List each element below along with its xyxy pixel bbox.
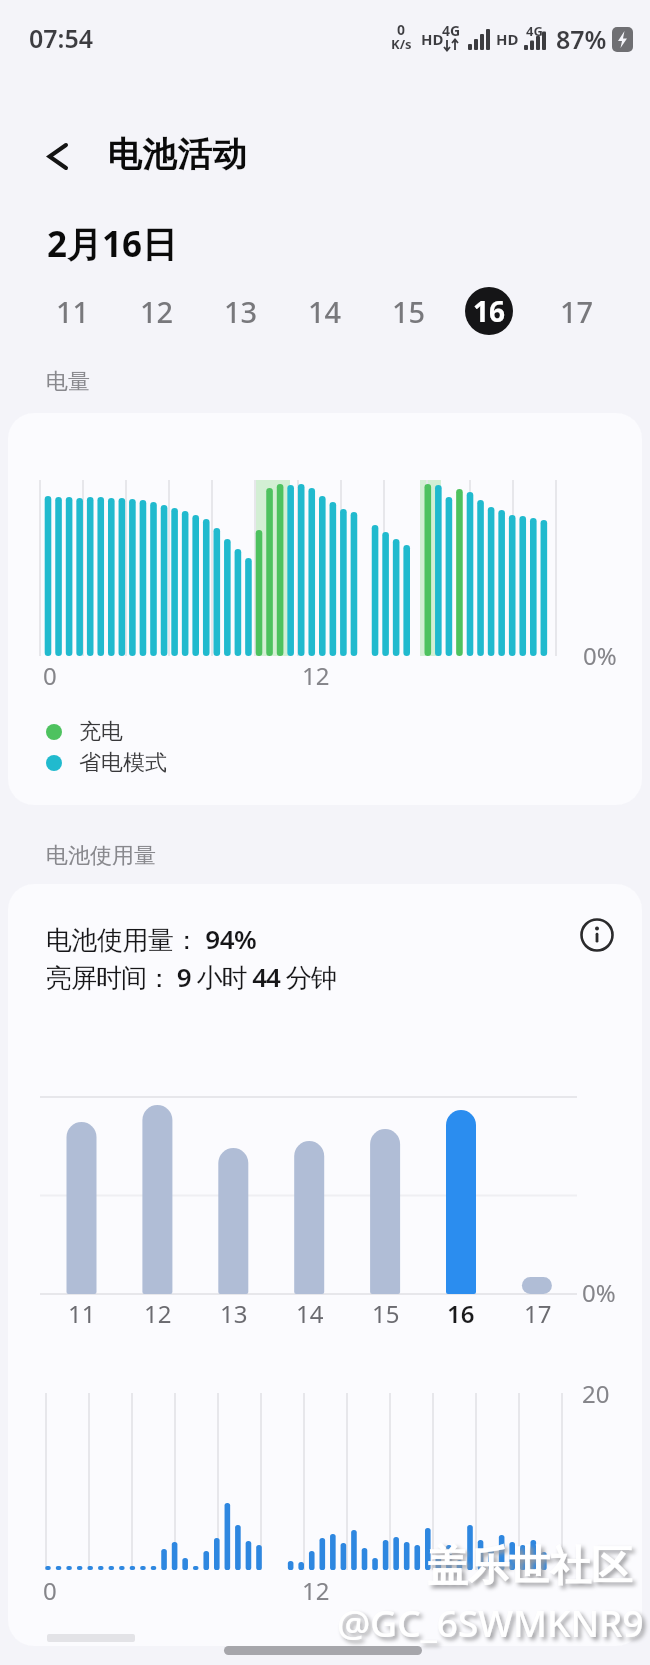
staticText: 电池使用量： 94% bbox=[46, 921, 257, 957]
staticText: 11 bbox=[68, 1297, 96, 1330]
button[interactable]: 11 bbox=[43, 287, 103, 335]
staticText: 电量 bbox=[46, 368, 90, 396]
staticText: 16 bbox=[447, 1297, 475, 1330]
staticText: 12 bbox=[302, 1574, 330, 1607]
staticText: 13 bbox=[220, 1297, 248, 1330]
staticText: @GC_6SWMKNR9 bbox=[337, 1597, 644, 1647]
staticText: 0 bbox=[43, 1574, 57, 1607]
staticText: 13 bbox=[224, 292, 258, 331]
staticText: 12 bbox=[144, 1297, 172, 1330]
staticText: 17 bbox=[560, 292, 594, 331]
staticText: 17 bbox=[524, 1297, 552, 1330]
staticText: 11 bbox=[56, 292, 90, 331]
staticText: 07:54 bbox=[29, 21, 94, 55]
staticText: K/s bbox=[391, 35, 412, 53]
staticText: 12 bbox=[140, 292, 174, 331]
staticText: 0 bbox=[397, 20, 406, 39]
staticText: 14 bbox=[296, 1297, 324, 1330]
staticText: 0 bbox=[43, 659, 57, 692]
staticText: 15 bbox=[392, 292, 426, 331]
staticText: 电池使用量 bbox=[46, 842, 156, 870]
staticText: HD bbox=[421, 29, 444, 49]
button[interactable] bbox=[36, 132, 84, 180]
staticText: 2月16日 bbox=[47, 220, 178, 268]
staticText: 0% bbox=[582, 1276, 616, 1309]
staticText: 87% bbox=[556, 22, 607, 56]
button[interactable]: 16 bbox=[465, 287, 513, 335]
staticText: 0% bbox=[583, 639, 617, 672]
staticText: 15 bbox=[372, 1297, 400, 1330]
button[interactable]: 13 bbox=[211, 287, 271, 335]
staticText: 盖乐世社区 bbox=[427, 1541, 632, 1593]
staticText: 14 bbox=[308, 292, 342, 331]
staticText: 充电 bbox=[79, 718, 123, 746]
staticText: 4G bbox=[526, 22, 543, 40]
staticText: HD bbox=[496, 29, 519, 49]
button[interactable] bbox=[575, 913, 619, 957]
button[interactable]: 15 bbox=[379, 287, 439, 335]
staticText: 省电模式 bbox=[79, 749, 167, 777]
staticText: 16 bbox=[473, 292, 506, 330]
staticText: 12 bbox=[302, 659, 330, 692]
button[interactable]: 12 bbox=[127, 287, 187, 335]
staticText: 20 bbox=[582, 1377, 610, 1410]
staticText: 4G bbox=[442, 21, 461, 40]
staticText: 亮屏时间： 9 小时 44 分钟 bbox=[46, 959, 336, 995]
button[interactable]: 14 bbox=[295, 287, 355, 335]
button[interactable]: 17 bbox=[547, 287, 607, 335]
staticText: 电池活动 bbox=[107, 133, 247, 176]
